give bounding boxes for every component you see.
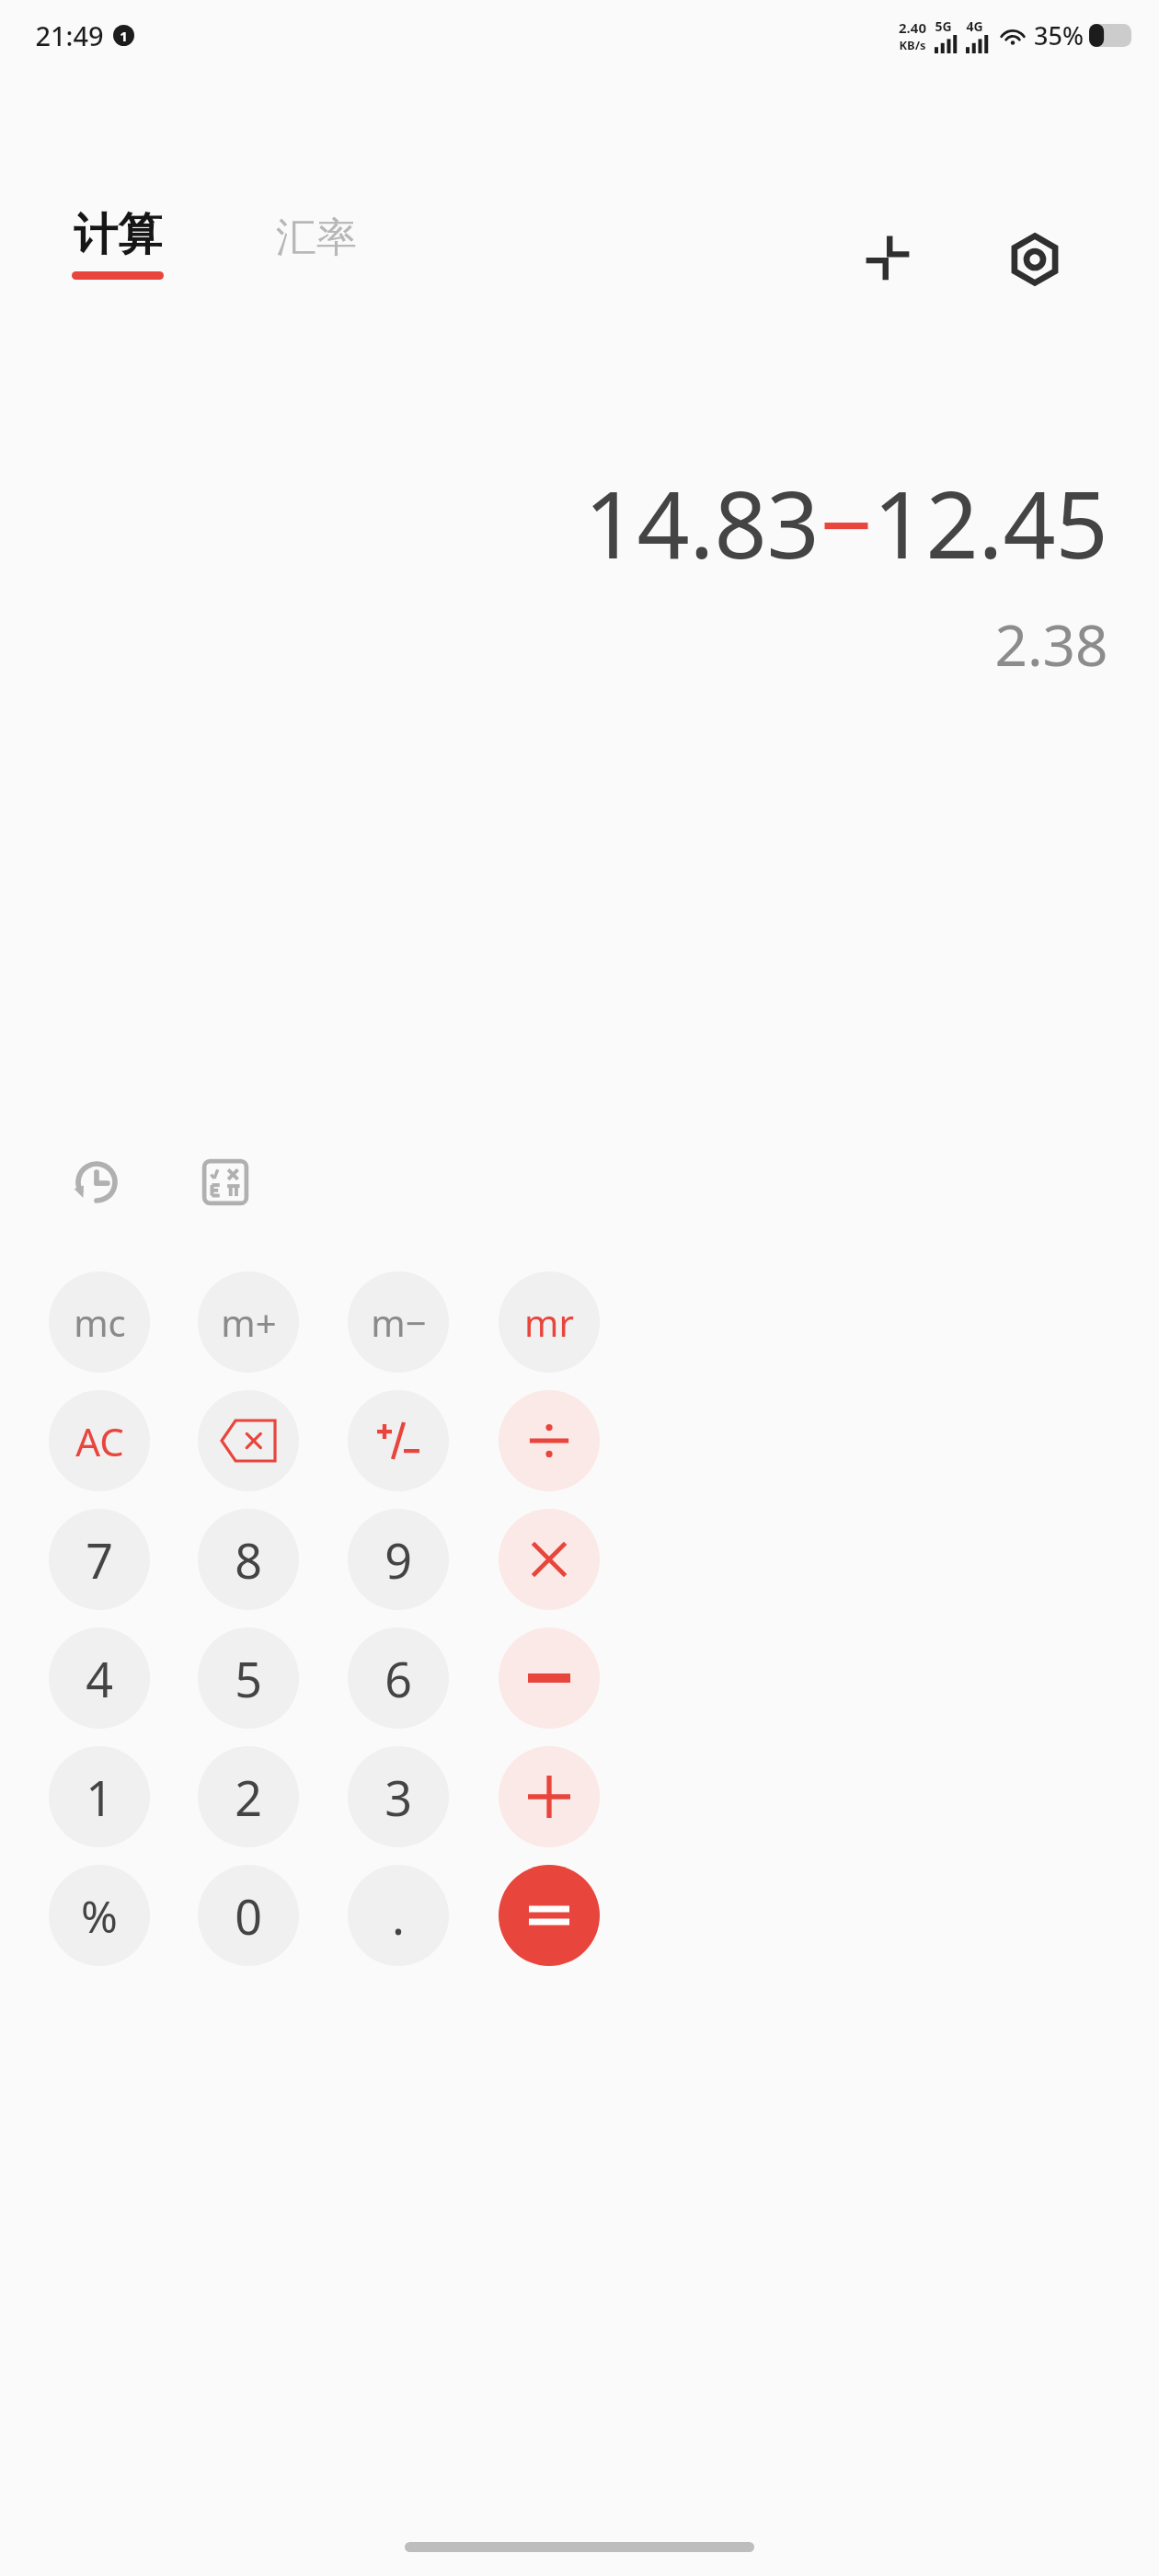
staticText: m+ <box>221 1297 277 1347</box>
button[interactable]: 9 <box>348 1509 449 1610</box>
button[interactable]: Scientific <box>179 1136 271 1228</box>
button[interactable]: mr <box>499 1271 600 1373</box>
staticText: 9 <box>384 1527 412 1593</box>
button[interactable]: 8 <box>198 1509 299 1610</box>
staticText: 35% <box>1034 18 1084 52</box>
staticText: 5 <box>235 1646 262 1711</box>
staticText: 8 <box>235 1527 262 1593</box>
button[interactable]: Settings <box>984 209 1085 310</box>
button[interactable]: 6 <box>348 1627 449 1729</box>
button[interactable]: 计算 <box>72 207 164 280</box>
button[interactable]: 5 <box>198 1627 299 1729</box>
button[interactable]: 7 <box>49 1509 150 1610</box>
staticText: . <box>392 1883 405 1949</box>
button[interactable]: m− <box>348 1271 449 1373</box>
button[interactable]: Backspace <box>198 1390 299 1491</box>
staticText: 0 <box>235 1883 262 1949</box>
staticText: mc <box>74 1297 126 1347</box>
button[interactable]: Plus minus <box>348 1390 449 1491</box>
staticText: 7 <box>86 1527 113 1593</box>
staticText: 2 <box>235 1765 262 1830</box>
button[interactable]: Collapse <box>837 209 938 310</box>
staticText: 1 <box>86 1765 113 1830</box>
button[interactable]: Minus <box>499 1627 600 1729</box>
button[interactable]: 0 <box>198 1865 299 1966</box>
staticText: 21:49 <box>35 17 104 53</box>
button[interactable]: m+ <box>198 1271 299 1373</box>
staticText: KB/s <box>899 37 926 53</box>
button[interactable]: Equals <box>499 1865 600 1966</box>
staticText: 2.40 <box>899 18 926 37</box>
staticText: % <box>81 1886 118 1946</box>
button[interactable]: 汇率 <box>276 213 357 263</box>
button[interactable]: mc <box>49 1271 150 1373</box>
staticText: − <box>820 460 873 585</box>
button[interactable]: Divide <box>499 1390 600 1491</box>
button[interactable]: Multiply <box>499 1509 600 1610</box>
staticText: m− <box>371 1297 427 1347</box>
staticText: 6 <box>384 1646 412 1711</box>
staticText: 2.38 <box>994 605 1108 683</box>
button[interactable]: AC <box>49 1390 150 1491</box>
button[interactable]: History <box>51 1136 143 1228</box>
button[interactable]: 1 <box>49 1746 150 1847</box>
button[interactable]: 3 <box>348 1746 449 1847</box>
staticText: 5G <box>935 17 952 35</box>
staticText: 12.45 <box>873 460 1108 585</box>
staticText: 汇率 <box>276 213 357 263</box>
staticText: 4G <box>966 17 983 35</box>
button[interactable]: 4 <box>49 1627 150 1729</box>
staticText: 14.83 <box>584 460 820 585</box>
button[interactable]: Plus <box>499 1746 600 1847</box>
staticText: 4 <box>86 1646 113 1711</box>
button[interactable]: % <box>49 1865 150 1966</box>
staticText: 1 <box>120 27 128 45</box>
button[interactable]: 2 <box>198 1746 299 1847</box>
staticText: mr <box>524 1297 574 1347</box>
button[interactable]: . <box>348 1865 449 1966</box>
staticText: AC <box>75 1415 124 1467</box>
staticText: 计算 <box>74 207 162 262</box>
staticText: 3 <box>384 1765 412 1830</box>
